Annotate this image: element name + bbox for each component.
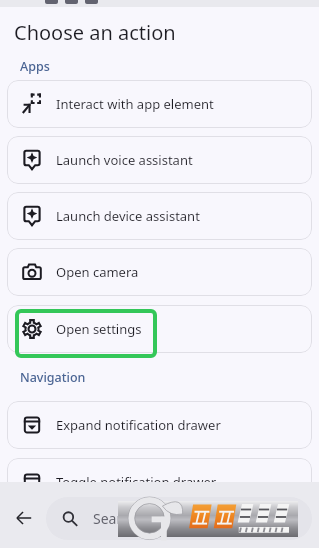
button[interactable]: Expand notification drawer bbox=[7, 401, 312, 449]
staticText: Search... bbox=[93, 509, 149, 528]
staticText: Launch device assistant bbox=[56, 207, 200, 225]
button[interactable]: Interact with app element bbox=[7, 80, 312, 128]
staticText: Expand notification drawer bbox=[56, 416, 221, 434]
staticText: Toggle notification drawer bbox=[56, 473, 217, 491]
staticText: Choose an action bbox=[14, 19, 176, 46]
staticText: Navigation bbox=[20, 369, 86, 386]
button[interactable]: Open camera bbox=[7, 248, 312, 296]
staticText: Interact with app element bbox=[56, 95, 214, 113]
staticText: Open camera bbox=[56, 263, 139, 281]
staticText: Launch voice assistant bbox=[56, 151, 193, 169]
button[interactable]: Back bbox=[8, 502, 40, 534]
staticText: Apps bbox=[20, 58, 50, 75]
staticText: Open settings bbox=[56, 320, 142, 338]
button[interactable]: Toggle notification drawer bbox=[7, 458, 312, 506]
button[interactable]: Open settings bbox=[7, 305, 312, 353]
button[interactable]: Search... bbox=[46, 497, 312, 540]
button[interactable]: Launch device assistant bbox=[7, 192, 312, 240]
button[interactable]: Launch voice assistant bbox=[7, 136, 312, 184]
